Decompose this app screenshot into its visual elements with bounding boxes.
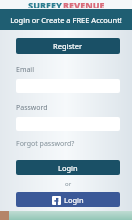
staticText: Email [16,65,34,75]
staticText: Login or Create a FREE Account! [10,15,122,25]
other: Facebook [52,196,61,205]
button[interactable]: Login or Create a FREE Account! [0,9,132,30]
button[interactable]: Facebook [16,192,120,207]
button[interactable]: Forgot password? [16,139,75,149]
staticText: REVENUE [63,0,105,8]
staticText: Register [53,41,83,51]
staticText: Password [16,103,48,113]
button[interactable]: Login [16,160,120,175]
staticText: Forgot password? [16,139,75,149]
staticText: Login [64,195,84,205]
staticText: SURF [28,0,51,8]
staticText: EY [51,0,62,8]
staticText: or [65,180,72,188]
staticText: Login [58,163,78,173]
button[interactable]: Register [16,38,120,54]
